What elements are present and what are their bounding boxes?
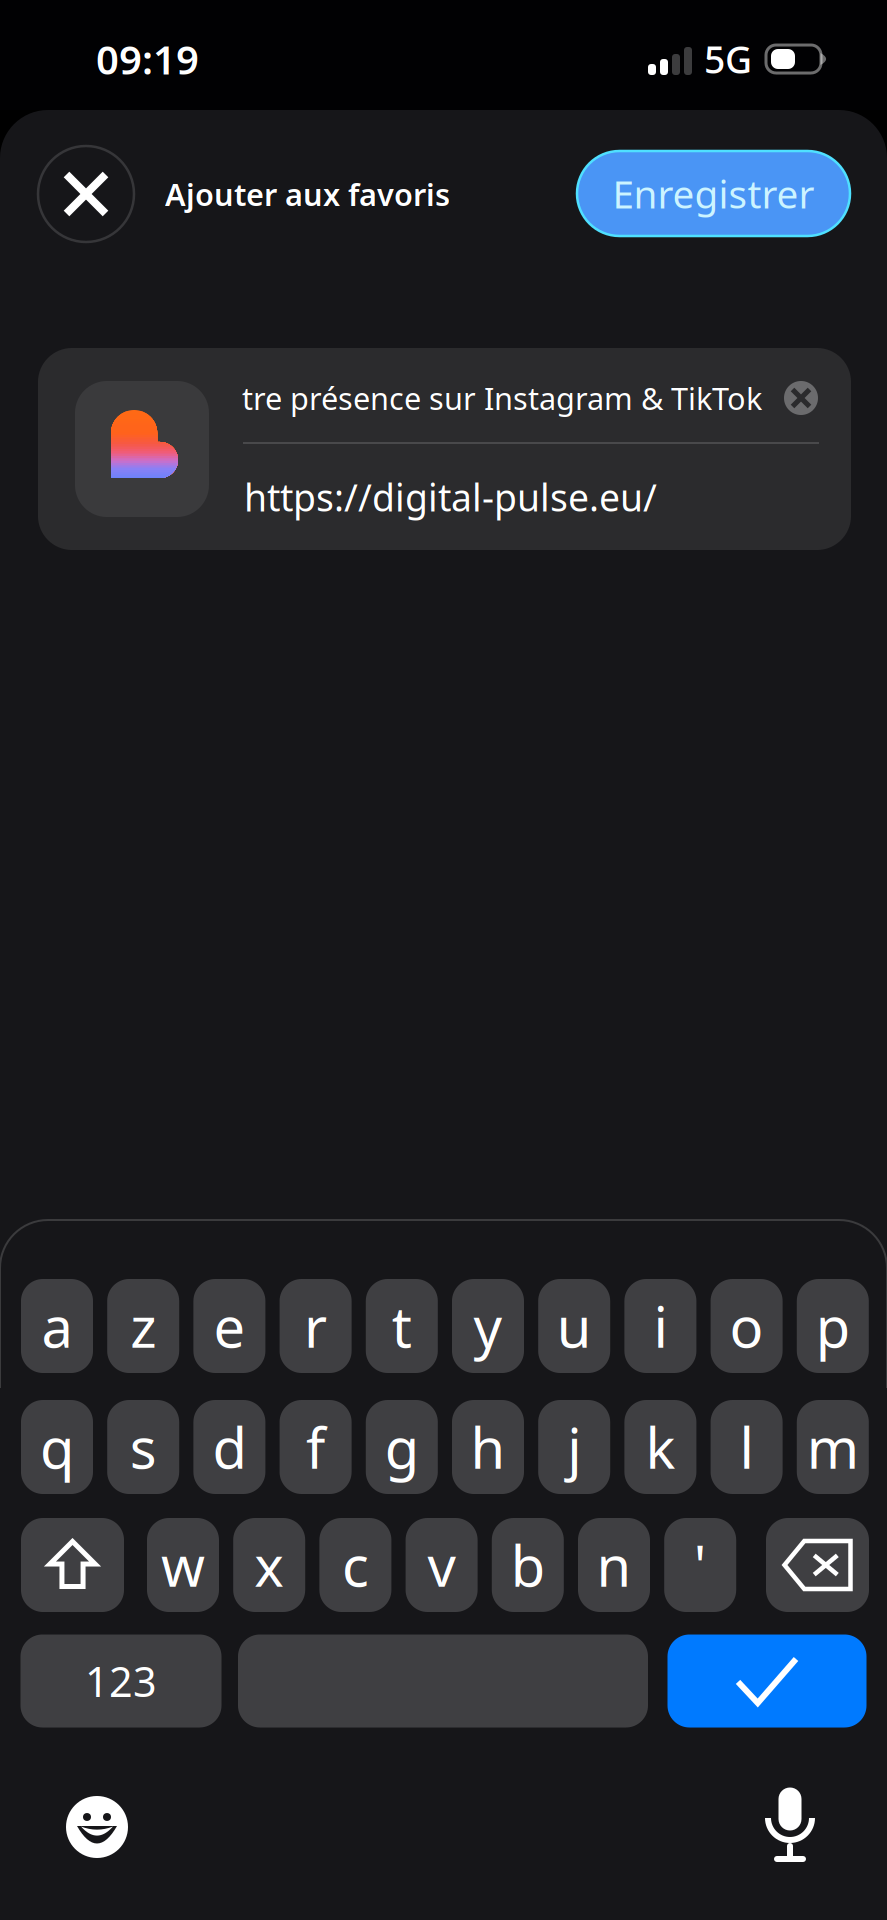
button[interactable]: r	[280, 1279, 352, 1373]
button[interactable]: m	[797, 1400, 869, 1494]
button[interactable]: x	[233, 1518, 305, 1612]
staticText: e	[213, 1289, 245, 1363]
staticText: k	[645, 1410, 675, 1484]
button[interactable]: v	[406, 1518, 478, 1612]
button[interactable]: s	[107, 1400, 179, 1494]
staticText: v	[428, 1528, 456, 1602]
button[interactable]: '	[664, 1518, 736, 1612]
button[interactable]: Retour arrière	[766, 1518, 869, 1612]
staticText: y	[473, 1289, 502, 1363]
button[interactable]: i	[624, 1279, 696, 1373]
button[interactable]: f	[280, 1400, 352, 1494]
button[interactable]: j	[538, 1400, 610, 1494]
staticText: o	[730, 1289, 764, 1363]
button[interactable]: l	[711, 1400, 783, 1494]
staticText: s	[130, 1410, 157, 1484]
staticText: Ajouter aux favoris	[165, 174, 450, 214]
button[interactable]: Émojis	[65, 1795, 129, 1859]
button[interactable]: u	[538, 1279, 610, 1373]
button[interactable]: w	[147, 1518, 219, 1612]
button[interactable]: g	[366, 1400, 438, 1494]
button[interactable]: q	[21, 1400, 93, 1494]
staticText: j	[567, 1410, 581, 1484]
button[interactable]: e	[193, 1279, 265, 1373]
button[interactable]: Dictée	[760, 1787, 820, 1867]
staticText: c	[342, 1528, 369, 1602]
staticText: b	[511, 1528, 545, 1602]
staticText: r	[304, 1289, 327, 1363]
button[interactable]: a	[21, 1279, 93, 1373]
button[interactable]: d	[193, 1400, 265, 1494]
staticText: Enregistrer	[612, 168, 814, 219]
staticText: m	[807, 1410, 859, 1484]
button[interactable]: b	[492, 1518, 564, 1612]
button[interactable]: n	[578, 1518, 650, 1612]
button[interactable]: Espace	[238, 1634, 648, 1727]
button[interactable]: Effacer	[779, 376, 823, 420]
staticText: d	[212, 1410, 246, 1484]
staticText: a	[41, 1289, 72, 1363]
staticText: u	[557, 1289, 592, 1363]
staticText: q	[40, 1410, 74, 1484]
button[interactable]: y	[452, 1279, 524, 1373]
staticText: i	[653, 1289, 667, 1363]
button[interactable]: h	[452, 1400, 524, 1494]
button[interactable]: Majuscule	[21, 1518, 124, 1612]
staticText: tre présence sur Instagram & TikTok	[242, 378, 762, 418]
staticText: g	[385, 1410, 419, 1484]
staticText: 123	[85, 1654, 157, 1708]
staticText: l	[740, 1410, 754, 1484]
staticText: '	[694, 1528, 707, 1602]
staticText: w	[161, 1528, 205, 1602]
staticText: 5G	[704, 34, 752, 84]
button[interactable]: k	[624, 1400, 696, 1494]
button[interactable]: Valider	[667, 1634, 866, 1727]
button[interactable]: Enregistrer	[577, 151, 850, 236]
button[interactable]: t	[366, 1279, 438, 1373]
staticText: h	[470, 1410, 505, 1484]
button[interactable]: p	[797, 1279, 869, 1373]
staticText: p	[816, 1289, 850, 1363]
staticText: n	[596, 1528, 631, 1602]
staticText: x	[254, 1528, 284, 1602]
button[interactable]: Fermer	[38, 146, 134, 242]
button[interactable]: z	[107, 1279, 179, 1373]
staticText: https://digital-pulse.eu/	[244, 472, 657, 522]
staticText: f	[306, 1410, 325, 1484]
button[interactable]: o	[711, 1279, 783, 1373]
staticText: t	[392, 1289, 412, 1363]
button[interactable]: c	[319, 1518, 391, 1612]
staticText: 09:19	[96, 32, 199, 85]
button[interactable]: 123	[20, 1634, 221, 1727]
staticText: z	[130, 1289, 156, 1363]
